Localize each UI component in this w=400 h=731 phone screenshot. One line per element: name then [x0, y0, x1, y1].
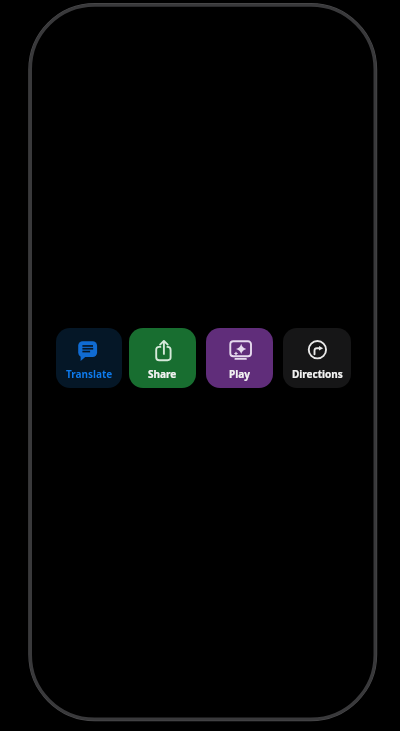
staticText: Directions [292, 367, 343, 381]
button[interactable]: Play [206, 328, 273, 388]
staticText: Translate [66, 367, 113, 381]
button[interactable]: Share [129, 328, 196, 388]
staticText: Share [148, 367, 177, 381]
button[interactable]: Directions [283, 328, 351, 388]
staticText: Play [229, 367, 250, 381]
button[interactable]: Translate [56, 328, 122, 388]
